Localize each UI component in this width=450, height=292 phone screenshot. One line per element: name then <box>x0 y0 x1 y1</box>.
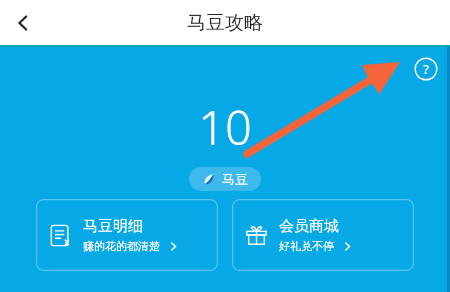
staticText: 马豆攻略 <box>187 11 263 35</box>
button[interactable]: Back <box>0 0 46 45</box>
staticText: 马豆明细 <box>83 217 143 236</box>
staticText: 好礼兑不停 <box>279 239 334 253</box>
button[interactable]: 马豆明细 <box>36 199 218 271</box>
staticText: 10 <box>198 95 252 159</box>
staticText: 赚的花的都清楚 <box>83 239 160 253</box>
staticText: ? <box>423 60 429 78</box>
button[interactable]: 马豆 <box>189 167 261 191</box>
button[interactable]: 会员商城 <box>232 199 414 271</box>
staticText: 马豆 <box>222 171 248 187</box>
staticText: 会员商城 <box>279 217 339 236</box>
button[interactable]: Help <box>414 57 438 81</box>
